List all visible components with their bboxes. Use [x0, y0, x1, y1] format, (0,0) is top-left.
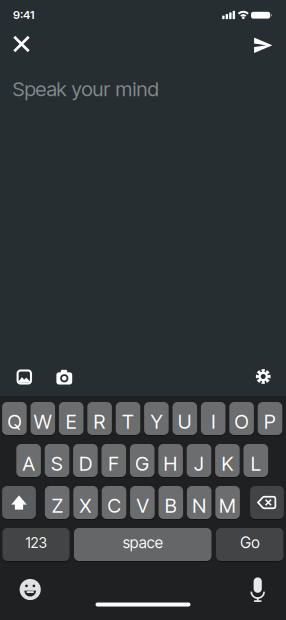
- button[interactable]: U: [172, 401, 197, 435]
- staticText: Q: [7, 410, 21, 433]
- button[interactable]: C: [102, 485, 126, 519]
- button[interactable]: W: [30, 401, 55, 435]
- button[interactable]: K: [215, 443, 240, 477]
- button[interactable]: Shift: [2, 485, 36, 519]
- button[interactable]: 123: [2, 527, 70, 561]
- staticText: J: [194, 452, 204, 475]
- staticText: 9:41: [13, 8, 34, 22]
- button[interactable]: Dictation: [243, 574, 273, 604]
- staticText: W: [34, 410, 52, 433]
- button[interactable]: S: [45, 443, 69, 477]
- button[interactable]: Q: [2, 401, 27, 435]
- staticText: Y: [150, 410, 162, 433]
- staticText: F: [108, 452, 119, 475]
- button[interactable]: J: [187, 443, 211, 477]
- staticText: D: [79, 452, 92, 475]
- button[interactable]: N: [187, 485, 211, 519]
- button[interactable]: space: [74, 527, 211, 561]
- button[interactable]: Delete: [250, 485, 284, 519]
- button[interactable]: O: [229, 401, 254, 435]
- button[interactable]: G: [130, 443, 154, 477]
- staticText: P: [264, 410, 276, 433]
- button[interactable]: D: [73, 443, 98, 477]
- button[interactable]: Go: [216, 527, 283, 561]
- staticText: E: [66, 410, 77, 433]
- button[interactable]: L: [243, 443, 268, 477]
- button[interactable]: Emoji: [15, 574, 45, 604]
- staticText: R: [94, 410, 106, 433]
- button[interactable]: F: [101, 443, 126, 477]
- staticText: V: [136, 494, 148, 517]
- staticText: I: [211, 410, 215, 433]
- staticText: Z: [52, 494, 63, 517]
- button[interactable]: B: [158, 485, 183, 519]
- button[interactable]: Z: [45, 485, 69, 519]
- staticText: H: [164, 452, 178, 475]
- button[interactable]: Camera: [51, 364, 77, 390]
- button[interactable]: H: [158, 443, 183, 477]
- button[interactable]: P: [258, 401, 282, 435]
- button[interactable]: I: [201, 401, 225, 435]
- staticText: U: [178, 410, 192, 433]
- button[interactable]: Photo library: [11, 364, 37, 390]
- staticText: space: [123, 533, 163, 552]
- staticText: X: [80, 494, 92, 517]
- staticText: T: [122, 410, 134, 433]
- staticText: Speak your mind: [12, 77, 158, 101]
- button[interactable]: A: [16, 443, 41, 477]
- button[interactable]: Settings: [250, 363, 276, 389]
- button[interactable]: M: [215, 485, 240, 519]
- staticText: O: [235, 410, 249, 433]
- button[interactable]: Y: [144, 401, 169, 435]
- button[interactable]: R: [87, 401, 112, 435]
- staticText: Go: [240, 533, 259, 552]
- staticText: G: [135, 452, 149, 475]
- staticText: S: [51, 452, 63, 475]
- button[interactable]: T: [116, 401, 140, 435]
- staticText: M: [219, 494, 236, 517]
- button[interactable]: E: [59, 401, 83, 435]
- staticText: B: [165, 494, 177, 517]
- button[interactable]: Close: [7, 30, 35, 58]
- staticText: K: [221, 452, 233, 475]
- button[interactable]: X: [73, 485, 98, 519]
- staticText: 123: [25, 534, 46, 551]
- staticText: A: [23, 452, 35, 475]
- staticText: C: [107, 494, 120, 517]
- button[interactable]: Send: [249, 31, 277, 59]
- button[interactable]: V: [130, 485, 155, 519]
- staticText: L: [251, 452, 261, 475]
- staticText: N: [192, 494, 206, 517]
